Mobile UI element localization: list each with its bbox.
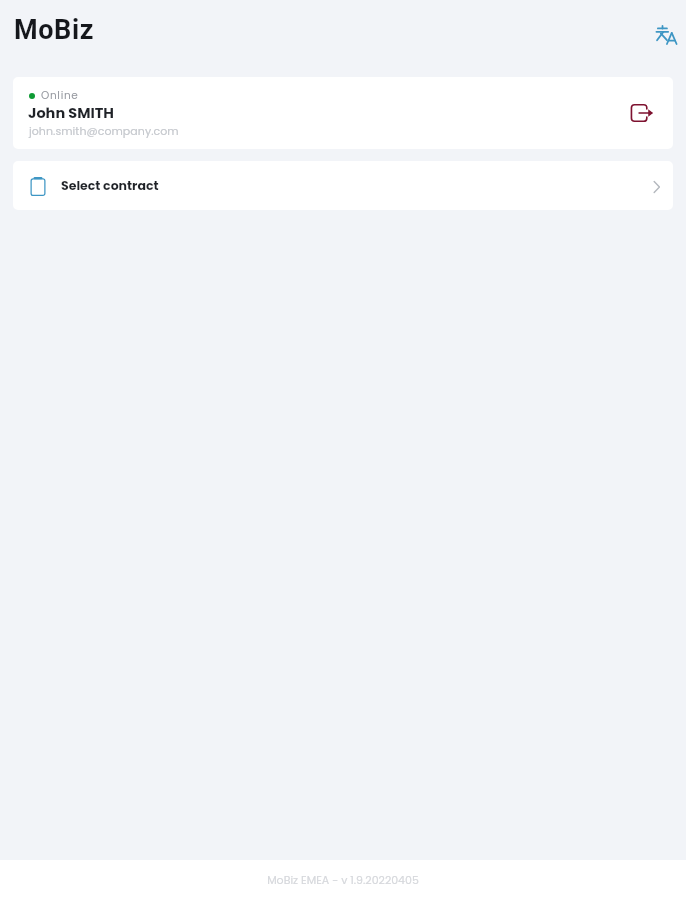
staticText: MoBiz EMEA - v 1.9.20220405	[267, 872, 419, 887]
staticText: Select contract	[61, 177, 159, 194]
button[interactable]: Online	[13, 77, 673, 149]
button[interactable]: Select contract	[13, 161, 673, 210]
staticText: john.smith@company.com	[29, 123, 179, 138]
button[interactable]: Change language	[650, 18, 683, 51]
staticText: MoBiz	[14, 14, 94, 46]
button[interactable]: Log out	[622, 93, 662, 133]
staticText: Online	[41, 88, 79, 103]
staticText: John SMITH	[28, 103, 114, 123]
